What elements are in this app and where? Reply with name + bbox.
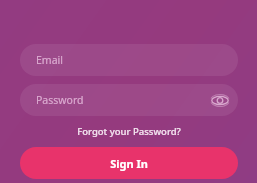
button[interactable]: Forgot your Password? bbox=[71, 122, 187, 141]
staticText: Forgot your Password? bbox=[77, 125, 181, 138]
button[interactable]: Email bbox=[20, 44, 238, 76]
staticText: Email bbox=[36, 53, 63, 67]
button[interactable]: Password bbox=[20, 84, 238, 116]
staticText: Password bbox=[36, 93, 84, 107]
button[interactable]: Show password bbox=[208, 88, 232, 112]
button[interactable]: Sign In bbox=[20, 147, 238, 179]
staticText: Sign In bbox=[110, 156, 148, 171]
